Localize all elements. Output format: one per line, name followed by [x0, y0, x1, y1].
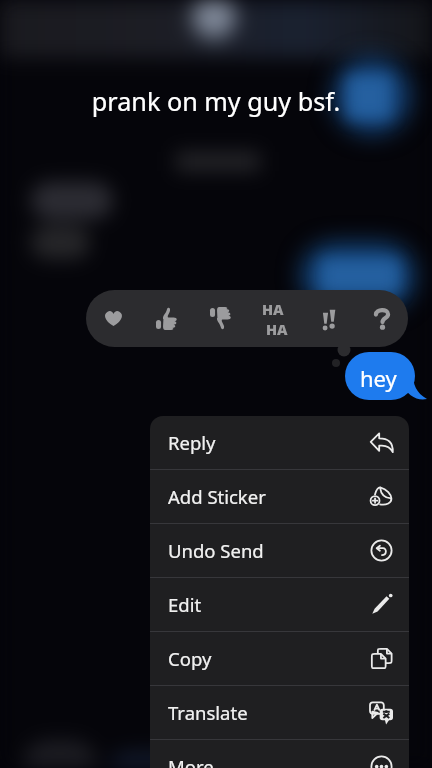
- staticText: Edit: [168, 592, 202, 617]
- button[interactable]: Translate: [150, 686, 409, 739]
- button[interactable]: Undo Send: [150, 524, 409, 577]
- staticText: hey: [360, 363, 397, 393]
- staticText: Copy: [168, 646, 212, 671]
- staticText: Reply: [168, 430, 216, 455]
- staticText: HA: [262, 299, 284, 319]
- button[interactable]: More...: [150, 740, 409, 768]
- staticText: Add Sticker: [168, 484, 266, 509]
- button[interactable]: Emphasize: [302, 290, 356, 347]
- staticText: Translate: [168, 700, 248, 725]
- staticText: prank on my guy bsf.: [0, 84, 432, 118]
- button[interactable]: Dislike: [194, 290, 248, 347]
- button[interactable]: Edit: [150, 578, 409, 631]
- button[interactable]: Copy: [150, 632, 409, 685]
- button[interactable]: Love: [86, 290, 140, 347]
- staticText: HA: [266, 319, 288, 339]
- button[interactable]: Add Sticker: [150, 470, 409, 523]
- staticText: More...: [168, 754, 229, 768]
- button[interactable]: Like: [140, 290, 194, 347]
- staticText: Undo Send: [168, 538, 264, 563]
- button[interactable]: Haha: [248, 290, 302, 347]
- button[interactable]: Reply: [150, 416, 409, 469]
- button[interactable]: Question: [356, 290, 408, 347]
